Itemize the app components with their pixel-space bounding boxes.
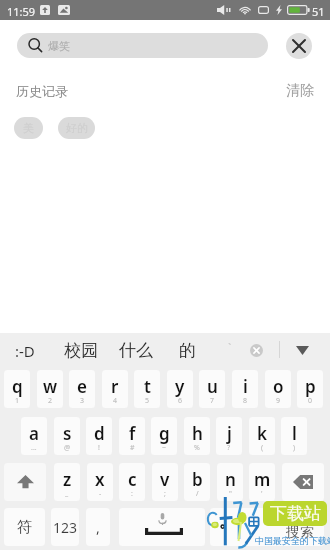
staticText: l <box>292 422 297 445</box>
staticText: 3 <box>80 396 85 406</box>
staticText: c <box>128 468 137 491</box>
button[interactable]: m <box>249 463 275 501</box>
button[interactable]: t <box>134 370 160 408</box>
staticText: d <box>94 422 105 445</box>
staticText: 4 <box>113 396 118 406</box>
staticText: - <box>99 489 102 499</box>
button[interactable]: 什么 <box>119 340 153 361</box>
staticText: 5 <box>145 396 150 406</box>
button[interactable]: 搜索 <box>210 508 324 546</box>
button[interactable]: Clear <box>247 341 265 359</box>
staticText: m <box>254 468 271 491</box>
button[interactable]: e <box>69 370 95 408</box>
staticText: q <box>12 375 23 398</box>
staticText: z <box>63 468 72 491</box>
button[interactable]: z <box>54 463 80 501</box>
staticText: 11:59 <box>7 4 36 19</box>
staticText: x <box>95 468 105 491</box>
staticText: i <box>243 375 248 398</box>
button[interactable]: 符 <box>4 508 45 546</box>
staticText: ' <box>261 489 263 499</box>
button[interactable]: Hide keyboard <box>292 340 312 360</box>
button[interactable]: g <box>151 417 177 455</box>
staticText: " <box>229 489 232 499</box>
button[interactable]: b <box>184 463 210 501</box>
button[interactable]: Close <box>286 33 312 59</box>
button[interactable]: 123 <box>51 508 79 546</box>
staticText: 爆笑 <box>48 39 70 53</box>
button[interactable]: 的 <box>179 340 196 361</box>
staticText: f <box>129 422 136 445</box>
staticText: ! <box>98 443 100 453</box>
staticText: a <box>29 422 39 445</box>
button[interactable]: , <box>86 508 110 546</box>
staticText: ( <box>261 443 264 453</box>
button[interactable]: w <box>37 370 63 408</box>
button[interactable]: r <box>102 370 128 408</box>
button[interactable]: j <box>216 417 242 455</box>
staticText: p <box>305 375 316 398</box>
button[interactable]: x <box>87 463 113 501</box>
staticText: ... <box>31 443 37 453</box>
staticText: 7 <box>210 396 215 406</box>
button[interactable]: k <box>249 417 275 455</box>
button[interactable]: :-D <box>15 341 35 361</box>
staticText: 好的 <box>66 121 88 135</box>
staticText: / <box>196 489 199 499</box>
staticText: @ <box>64 443 71 453</box>
button[interactable]: q <box>4 370 30 408</box>
staticText: : <box>131 489 133 499</box>
button[interactable]: 好的 <box>58 117 95 139</box>
staticText: % <box>194 443 200 453</box>
button[interactable]: l <box>281 417 307 455</box>
button[interactable]: d <box>86 417 112 455</box>
staticText: k <box>257 422 267 445</box>
staticText: e <box>77 375 87 398</box>
staticText: 中国最安全的下载站 <box>255 535 330 546</box>
staticText: o <box>273 375 284 398</box>
staticText: h <box>192 422 203 445</box>
button[interactable]: h <box>184 417 210 455</box>
button[interactable]: a <box>21 417 47 455</box>
staticText: t <box>144 375 151 398</box>
staticText: ~ <box>162 443 167 453</box>
staticText: 6 <box>178 396 183 406</box>
button[interactable]: v <box>152 463 178 501</box>
staticText: y <box>175 375 185 398</box>
button[interactable]: n <box>217 463 243 501</box>
button[interactable]: Shift <box>4 463 46 501</box>
staticText: ? <box>227 443 231 453</box>
staticText: 1 <box>15 396 20 406</box>
staticText: 123 <box>53 518 78 537</box>
staticText: 51 <box>312 4 325 19</box>
staticText: 0 <box>308 396 313 406</box>
staticText: , <box>96 518 100 537</box>
staticText: 历史记录 <box>16 83 68 99</box>
button[interactable]: 清除 <box>286 82 314 100</box>
button[interactable]: u <box>199 370 225 408</box>
staticText: s <box>63 422 72 445</box>
staticText: # <box>130 443 135 453</box>
button[interactable]: 美 <box>14 117 43 139</box>
button[interactable]: y <box>167 370 193 408</box>
staticText: 9 <box>276 396 281 406</box>
button[interactable]: Space <box>119 508 205 546</box>
button[interactable]: s <box>54 417 80 455</box>
staticText: 搜索 <box>286 523 314 541</box>
button[interactable]: o <box>265 370 291 408</box>
staticText: 8 <box>243 396 248 406</box>
button[interactable]: f <box>119 417 145 455</box>
staticText: _ <box>65 489 69 499</box>
staticText: 美 <box>23 121 34 135</box>
staticText: u <box>207 375 218 398</box>
button[interactable]: p <box>297 370 323 408</box>
button[interactable]: c <box>119 463 145 501</box>
button[interactable]: Backspace <box>282 463 324 501</box>
staticText: ) <box>293 443 296 453</box>
button[interactable]: 校园 <box>64 340 98 361</box>
staticText: g <box>159 422 170 445</box>
button[interactable]: i <box>232 370 258 408</box>
button[interactable]: 爆笑 <box>17 33 268 58</box>
staticText: 下载站 <box>270 503 321 524</box>
staticText: b <box>192 468 203 491</box>
